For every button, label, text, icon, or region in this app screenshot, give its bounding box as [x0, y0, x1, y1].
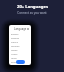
button[interactable]: German: [11, 44, 31, 48]
staticText: Hindi: [11, 57, 17, 60]
button[interactable]: French: [11, 40, 31, 44]
button[interactable]: [16, 60, 25, 64]
button[interactable]: Italian: [11, 48, 31, 52]
staticText: French: [11, 41, 18, 44]
staticText: Korean: [11, 61, 19, 64]
staticText: Arabic: [11, 53, 18, 56]
button[interactable]: Korean: [11, 60, 31, 64]
staticText: Italian: [11, 49, 18, 52]
staticText: Spanish: [11, 37, 20, 40]
staticText: Connect as you want: [17, 11, 47, 15]
button[interactable]: Arabic: [11, 52, 31, 56]
button[interactable]: English: [11, 32, 31, 36]
staticText: English: [11, 33, 19, 36]
staticText: German: [11, 45, 20, 48]
button[interactable]: Hindi: [11, 56, 31, 60]
staticText: Language: [14, 27, 27, 31]
button[interactable]: Spanish: [11, 36, 31, 40]
staticText: 20+ Languages: [17, 4, 48, 10]
